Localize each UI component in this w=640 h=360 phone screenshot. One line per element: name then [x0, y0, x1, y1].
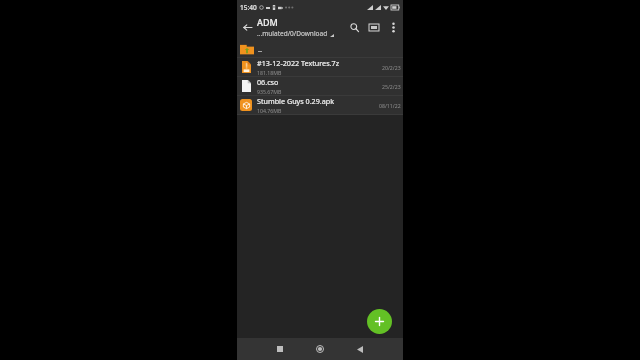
staticText: 15:40 [240, 3, 257, 12]
button[interactable]: Back [347, 338, 373, 360]
staticText: .. [258, 44, 263, 54]
button[interactable]: 06.cso [237, 77, 403, 95]
staticText: 08/11/22 [379, 102, 401, 109]
button[interactable]: Back [237, 17, 257, 37]
staticText: 25/2/23 [382, 83, 401, 90]
staticText: ADM [257, 16, 278, 28]
staticText: Stumble Guys 0.29.apk [257, 96, 335, 106]
staticText: 181.18MB [257, 69, 282, 76]
button[interactable]: .. [237, 40, 403, 57]
button[interactable]: #13-12-2022 Textures.7z [237, 58, 403, 76]
staticText: 20/2/23 [382, 64, 401, 71]
button[interactable]: Recent apps [267, 338, 293, 360]
button[interactable]: ADM [257, 16, 344, 38]
button[interactable]: Stumble Guys 0.29.apk [237, 96, 403, 114]
button[interactable]: Add download [367, 309, 392, 334]
button[interactable]: More options [384, 18, 402, 36]
staticText: #13-12-2022 Textures.7z [257, 58, 340, 68]
staticText: 06.cso [257, 77, 279, 87]
staticText: 935.67MB [257, 88, 282, 95]
button[interactable]: Home [307, 338, 333, 360]
staticText: ...mulated/0/Download [257, 29, 328, 38]
button[interactable]: View mode [364, 17, 384, 37]
staticText: 104.76MB [257, 107, 282, 114]
button[interactable]: Search [344, 17, 364, 37]
